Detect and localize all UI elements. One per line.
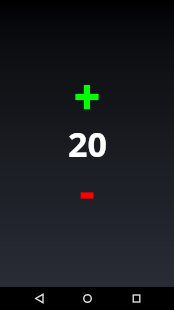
button[interactable]: Recent apps <box>120 287 152 310</box>
button[interactable]: Back <box>23 287 55 310</box>
button[interactable]: Increase count <box>63 73 111 121</box>
button[interactable]: Decrease count <box>63 172 111 220</box>
staticText: 20 <box>68 121 107 161</box>
button[interactable]: Home <box>71 287 103 310</box>
